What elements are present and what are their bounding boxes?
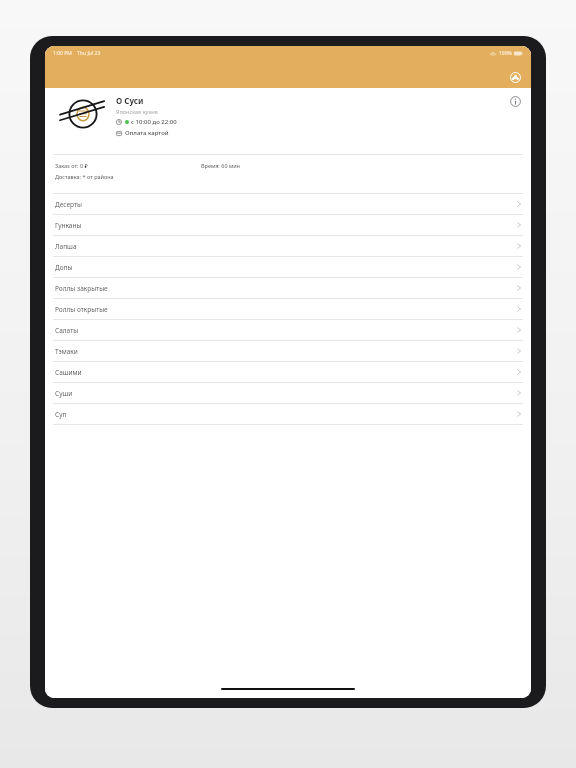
button[interactable]: Десерты — [45, 194, 531, 215]
button[interactable]: Сашими — [45, 362, 531, 383]
button[interactable]: Лапша — [45, 236, 531, 257]
staticText: Заказ от: 0 ₽ — [55, 162, 88, 169]
staticText: Тэмаки — [55, 347, 78, 356]
staticText: Допы — [55, 263, 73, 272]
button[interactable]: Information — [508, 94, 523, 109]
staticText: Время: 60 мин — [201, 162, 240, 169]
button[interactable]: Салаты — [45, 320, 531, 341]
staticText: Доставка: * от района — [55, 173, 114, 180]
staticText: О Суси — [116, 95, 144, 106]
button[interactable]: Тэмаки — [45, 341, 531, 362]
staticText: Thu Jul 23 — [77, 50, 101, 57]
staticText: Японская кухня — [116, 108, 158, 115]
button[interactable]: Роллы открытые — [45, 299, 531, 320]
staticText: 1:00 PM — [53, 50, 72, 57]
staticText: Суп — [55, 410, 67, 419]
staticText: Суши — [55, 389, 73, 398]
staticText: Оплата картой — [125, 129, 169, 137]
staticText: Сашими — [55, 368, 82, 377]
staticText: Десерты — [55, 200, 82, 209]
button[interactable]: Account — [507, 69, 523, 85]
button[interactable]: Допы — [45, 257, 531, 278]
staticText: 100% — [499, 50, 512, 57]
staticText: Салаты — [55, 326, 79, 335]
staticText: Роллы открытые — [55, 305, 108, 314]
staticText: Гунканы — [55, 221, 82, 230]
button[interactable]: Суши — [45, 383, 531, 404]
button[interactable]: Роллы закрытые — [45, 278, 531, 299]
button[interactable]: Суп — [45, 404, 531, 425]
staticText: Лапша — [55, 242, 77, 251]
staticText: с 10:00 до 22:00 — [131, 118, 177, 126]
button[interactable]: Гунканы — [45, 215, 531, 236]
staticText: Роллы закрытые — [55, 284, 108, 293]
